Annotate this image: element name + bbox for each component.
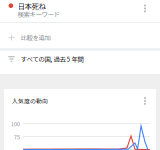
- button[interactable]: 日本死ね: [0, 0, 160, 21]
- button[interactable]: More options: [141, 96, 149, 106]
- staticText: 100: [11, 120, 20, 128]
- staticText: 人気度の動向: [12, 97, 48, 105]
- staticText: 75: [14, 133, 20, 141]
- button[interactable]: 比較を追加: [0, 25, 160, 50]
- staticText: 日本死ね: [18, 0, 46, 11]
- button[interactable]: すべての国, 過去 5 年間: [0, 52, 160, 66]
- staticText: 検索キーワード: [18, 9, 60, 19]
- staticText: 比較を追加: [20, 33, 50, 42]
- staticText: すべての国, 過去 5 年間: [20, 54, 83, 64]
